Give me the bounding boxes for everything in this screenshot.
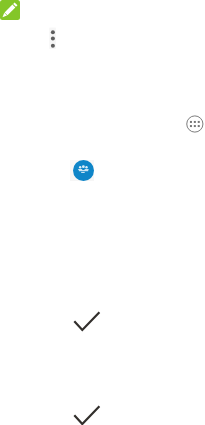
button[interactable]: More options bbox=[45, 22, 61, 54]
button[interactable]: Compose bbox=[0, 0, 20, 20]
button[interactable]: Completed item bbox=[0, 404, 205, 425]
button[interactable]: Google apps bbox=[186, 115, 203, 133]
button[interactable]: Completed item bbox=[0, 310, 205, 333]
button[interactable]: Account bbox=[73, 160, 94, 181]
